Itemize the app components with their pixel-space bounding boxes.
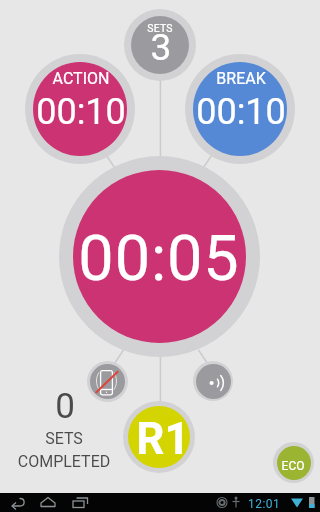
staticText: 00:10 [0, 91, 191, 133]
staticText: 00:10 [131, 91, 320, 133]
staticText: 00:05 [49, 222, 269, 296]
staticText: ACTION [0, 69, 191, 88]
button[interactable]: Vibration off [87, 361, 128, 402]
button[interactable]: Main timer [59, 156, 260, 357]
button[interactable]: Sound on [193, 361, 233, 401]
staticText: SETS [50, 22, 270, 34]
button[interactable]: Sets [124, 9, 196, 81]
staticText: COMPLETED [0, 452, 174, 471]
staticText: 12:01 [248, 497, 281, 511]
button[interactable]: Break time [185, 54, 295, 164]
staticText: 0 [0, 386, 175, 427]
button[interactable]: Action time [25, 54, 135, 164]
staticText: R1 [53, 413, 273, 465]
staticText: SETS [0, 429, 174, 448]
staticText: ECO [183, 459, 320, 473]
button[interactable]: Round 1 [123, 401, 195, 473]
staticText: BREAK [131, 69, 320, 88]
staticText: 3 [51, 26, 271, 69]
button[interactable]: Eco mode [273, 442, 314, 483]
